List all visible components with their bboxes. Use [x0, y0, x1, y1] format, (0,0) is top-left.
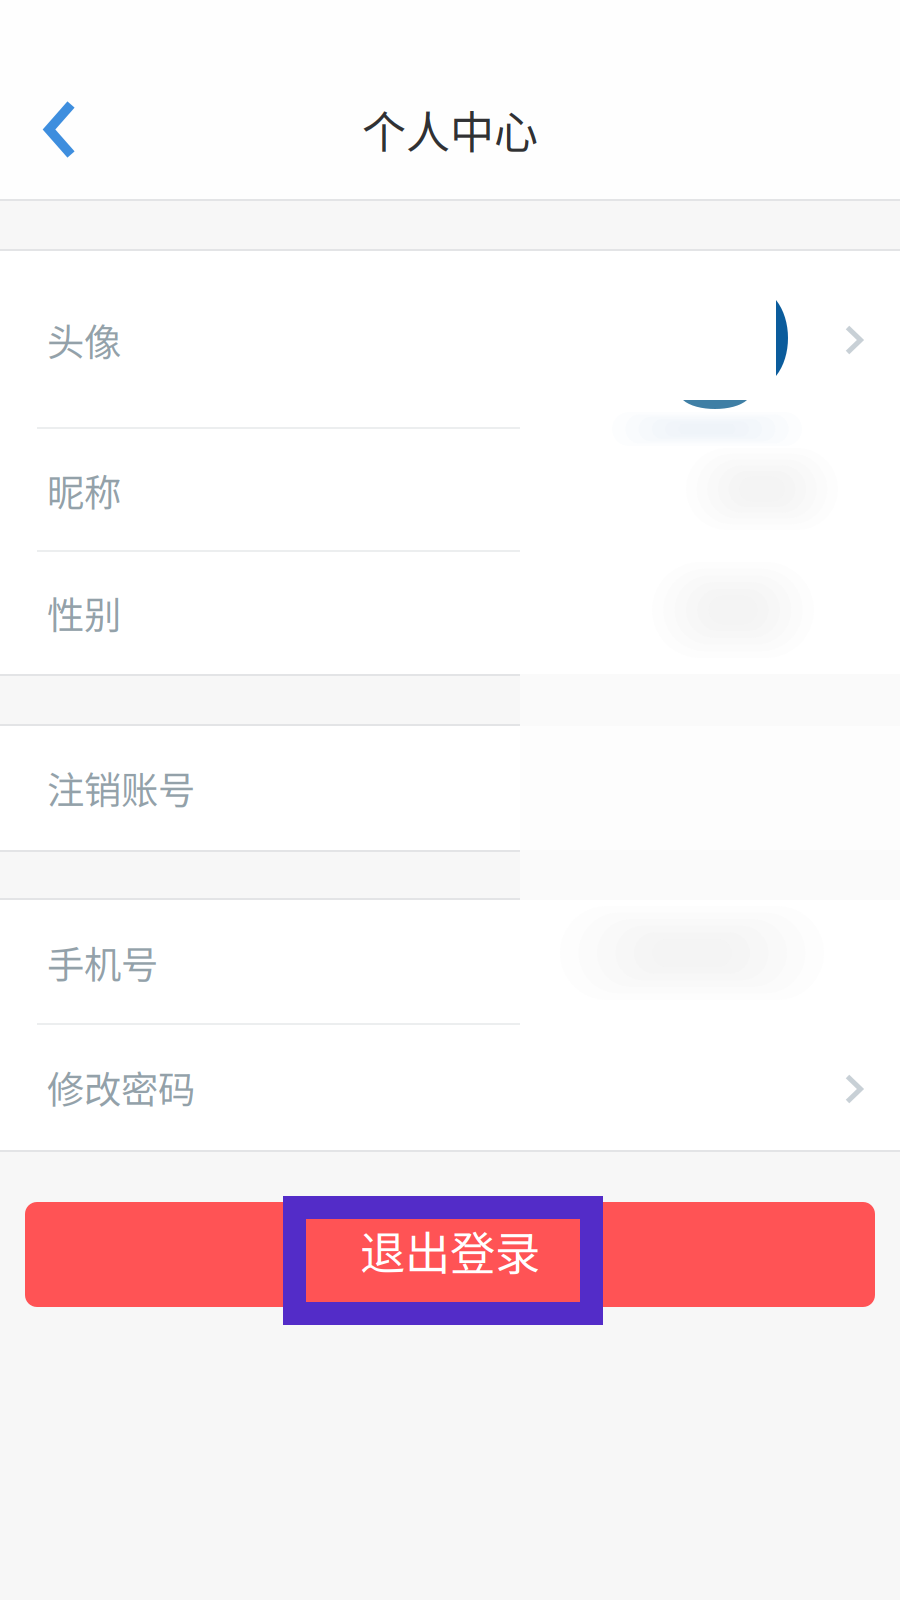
staticText: 个人中心 [362, 98, 538, 161]
staticText: 退出登录 [360, 1218, 540, 1283]
button[interactable]: 手机号 [0, 900, 900, 1025]
staticText: 昵称 [47, 463, 121, 518]
button[interactable]: 退出登录 [25, 1196, 875, 1327]
button[interactable]: 注销账号 [0, 726, 900, 850]
button[interactable]: Back [0, 60, 120, 199]
staticText: 注销账号 [47, 761, 195, 815]
staticText: 头像 [47, 313, 121, 367]
staticText: 性别 [47, 586, 121, 640]
staticText: 手机号 [47, 935, 158, 990]
button[interactable]: 昵称 [0, 429, 900, 552]
staticText: 修改密码 [47, 1060, 195, 1115]
button[interactable]: 头像 [0, 251, 900, 429]
button[interactable]: 修改密码 [0, 1025, 900, 1150]
button[interactable]: 性别 [0, 552, 900, 674]
